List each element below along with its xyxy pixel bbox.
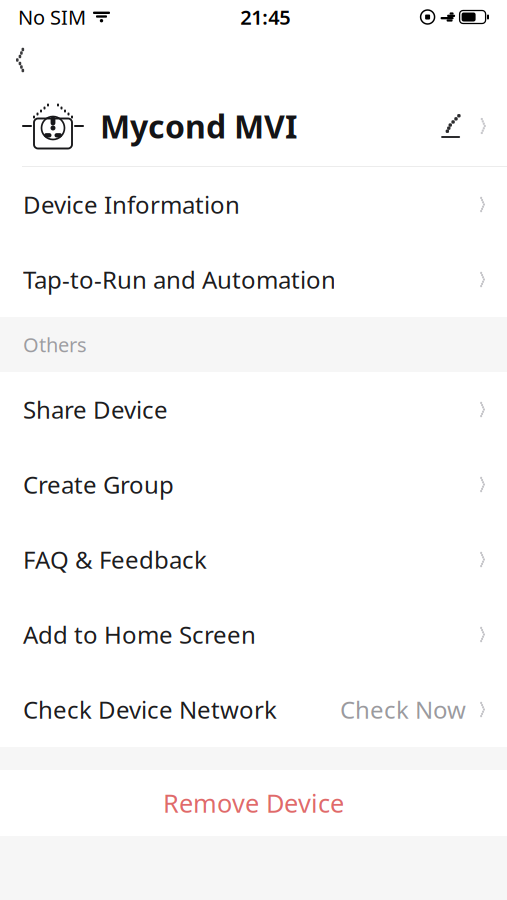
staticText: Device Information	[23, 189, 240, 220]
staticText: No SIM	[18, 4, 86, 30]
button[interactable]: Device Information	[0, 167, 507, 242]
button[interactable]: Add to Home Screen	[0, 597, 507, 672]
staticText: Add to Home Screen	[23, 619, 256, 650]
button[interactable]: Mycond MVI	[0, 86, 507, 167]
staticText: Check Device Network	[23, 694, 277, 725]
staticText: Remove Device	[163, 786, 344, 820]
button[interactable]: Create Group	[0, 447, 507, 522]
staticText: 21:45	[240, 4, 290, 30]
staticText: FAQ & Feedback	[23, 544, 207, 575]
button[interactable]: Remove Device	[0, 770, 507, 836]
button[interactable]: FAQ & Feedback	[0, 522, 507, 597]
staticText: Tap-to-Run and Automation	[23, 264, 336, 295]
staticText: Mycond MVI	[100, 105, 297, 147]
staticText: Check Now	[340, 694, 466, 725]
button[interactable]: Back	[0, 36, 45, 84]
button[interactable]: Check Device Network	[0, 672, 507, 747]
staticText: Create Group	[23, 469, 174, 500]
staticText: Share Device	[23, 394, 168, 425]
button[interactable]: Share Device	[0, 372, 507, 447]
button[interactable]: Tap-to-Run and Automation	[0, 242, 507, 317]
staticText: Others	[23, 331, 87, 358]
